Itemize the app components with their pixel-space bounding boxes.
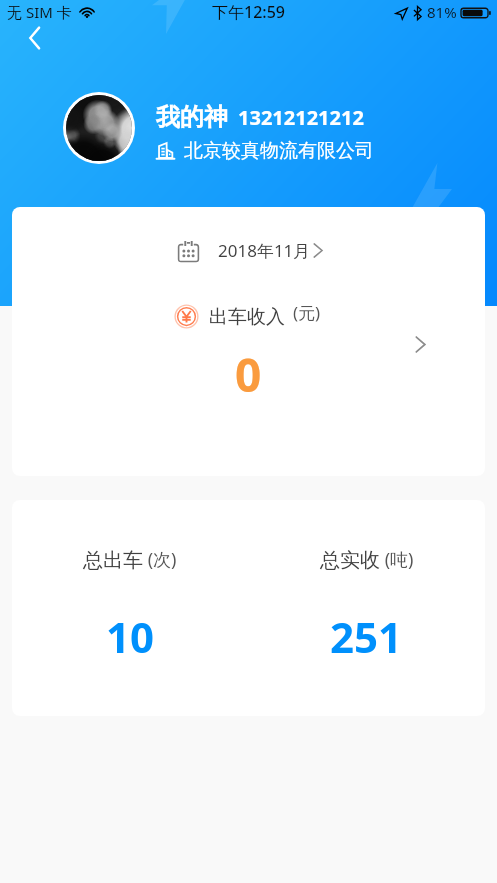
staticText: 251 (330, 608, 403, 665)
staticText: 总实收 (320, 548, 380, 573)
staticText: 2018年11月 (218, 239, 311, 262)
staticText: 10 (106, 608, 155, 665)
staticText: 出车收入 (209, 305, 285, 329)
staticText: 总出车 (83, 548, 143, 573)
staticText: 81% (427, 2, 457, 22)
staticText: 我的神 (156, 102, 228, 132)
staticText: 无 SIM 卡 (7, 2, 72, 22)
button[interactable]: 总出车 (12, 500, 248, 665)
button[interactable]: Back (14, 16, 58, 60)
button[interactable]: 总实收 (248, 500, 485, 665)
staticText: (元) (293, 301, 321, 324)
staticText: 0 (235, 343, 262, 406)
staticText: 13212121212 (238, 104, 364, 131)
button[interactable]: 2018年11月 (12, 207, 485, 476)
staticText: (次) (143, 547, 177, 572)
staticText: (吨) (380, 547, 414, 572)
staticText: 北京较真物流有限公司 (184, 139, 374, 163)
button[interactable]: View income details (400, 317, 440, 371)
staticText: 下午12:59 (212, 1, 285, 23)
